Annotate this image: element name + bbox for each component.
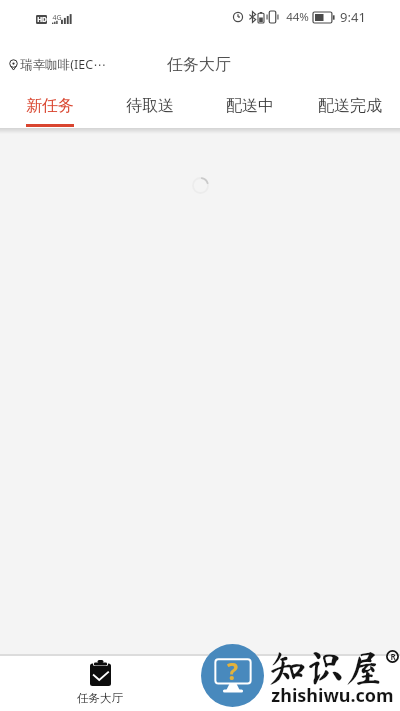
staticText: 任务大厅 <box>77 691 123 705</box>
staticText: zhishiwu.com <box>271 683 394 708</box>
staticText: 9:41 <box>340 8 366 26</box>
staticText: R <box>390 651 396 662</box>
button[interactable]: 瑞幸咖啡(IEC⋯ <box>9 56 106 73</box>
staticText: 待取送 <box>126 96 174 116</box>
staticText: 新任务 <box>26 96 74 116</box>
button[interactable]: 配送完成 <box>300 92 400 128</box>
button[interactable]: 任务大厅 <box>60 656 140 711</box>
staticText: 任务大厅 <box>167 55 231 75</box>
staticText: ? <box>227 655 238 686</box>
staticText: 配送完成 <box>318 96 382 116</box>
staticText: 4G <box>52 13 62 23</box>
staticText: 配送中 <box>226 96 274 116</box>
staticText: 44% <box>286 9 309 25</box>
staticText: 知识屋 <box>268 649 383 687</box>
staticText: 瑞幸咖啡(IEC⋯ <box>20 56 106 73</box>
button[interactable]: 新任务 <box>0 92 100 128</box>
button[interactable]: 配送中 <box>200 92 300 128</box>
button[interactable]: 待取送 <box>100 92 200 128</box>
staticText: HD <box>37 15 47 24</box>
